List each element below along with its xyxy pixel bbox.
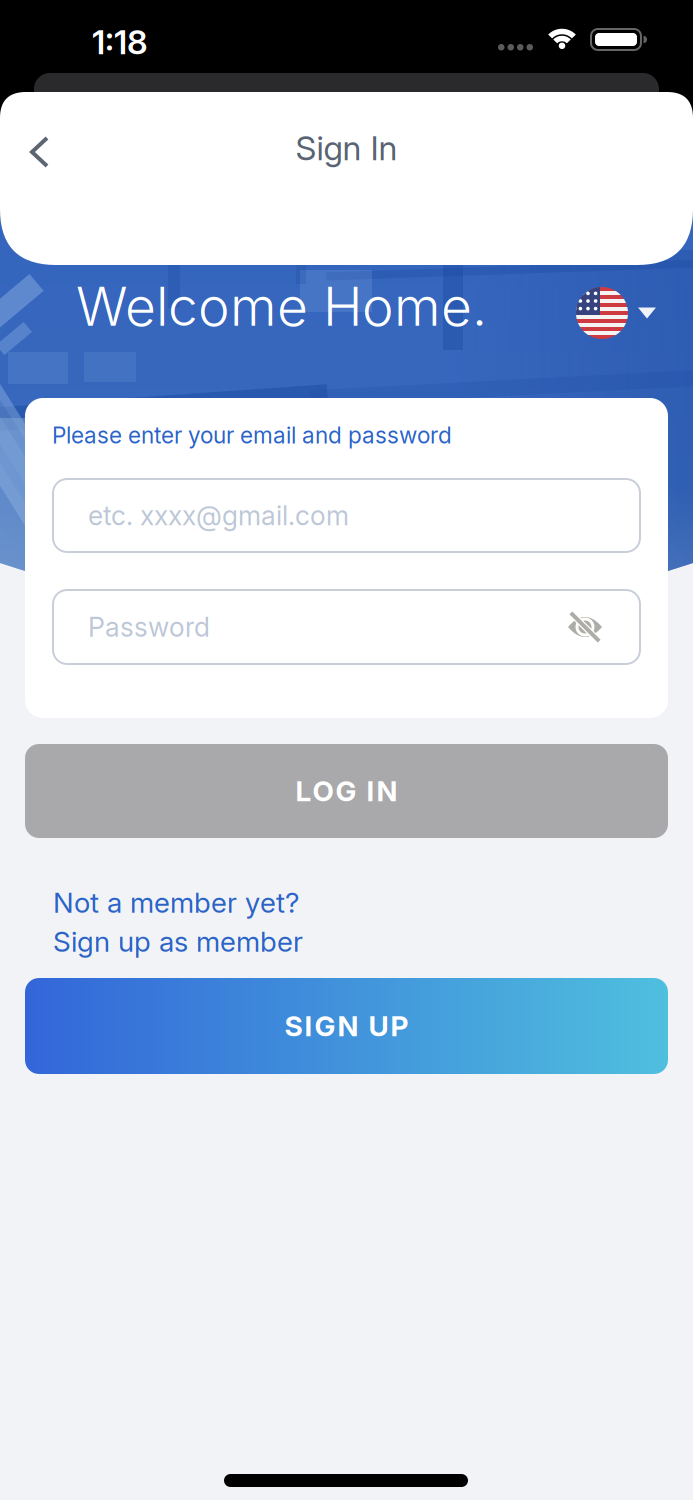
staticText: Sign In <box>295 128 397 168</box>
staticText: Not a member yet? <box>53 886 299 919</box>
button[interactable]: Select language <box>576 287 656 339</box>
staticText: Password <box>88 611 210 643</box>
staticText: LOG IN <box>295 774 397 807</box>
staticText: SIGN UP <box>284 1009 408 1042</box>
button[interactable]: LOG IN <box>25 744 668 838</box>
button[interactable]: Email <box>52 478 641 553</box>
button[interactable]: Password <box>52 589 641 665</box>
staticText: Sign up as member <box>53 925 303 958</box>
button[interactable]: Show password <box>557 599 613 655</box>
button[interactable]: Back <box>10 122 70 182</box>
button[interactable]: SIGN UP <box>25 978 668 1074</box>
staticText: Please enter your email and password <box>52 422 452 449</box>
button[interactable]: Sign up as member <box>53 925 303 958</box>
staticText: 1:18 <box>92 22 148 62</box>
staticText: Welcome Home. <box>76 275 487 338</box>
staticText: etc. xxxx@gmail.com <box>88 500 349 531</box>
